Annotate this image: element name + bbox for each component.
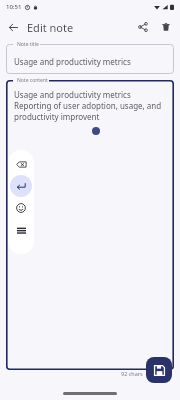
staticText: Note title [17, 41, 39, 48]
staticText: 92 chars [121, 370, 143, 377]
staticText: 10:51 [6, 3, 22, 11]
staticText: Usage and productivity metrics [14, 89, 131, 100]
staticText: Reporting of user adoption, usage, and [14, 100, 162, 111]
staticText: Usage and productivity metrics [14, 56, 131, 67]
button[interactable]: Delete [156, 17, 176, 37]
button[interactable]: Share [133, 17, 153, 37]
staticText: productivity improvent [14, 111, 100, 122]
button[interactable]: Note title [6, 44, 174, 74]
button[interactable]: More options [10, 219, 32, 241]
button[interactable]: New line [10, 175, 32, 197]
staticText: Edit note [27, 20, 74, 35]
button[interactable]: Note content [6, 80, 174, 370]
button[interactable]: Back [3, 17, 23, 37]
staticText: Note content [17, 77, 48, 84]
button[interactable]: Backspace [10, 153, 32, 175]
button[interactable]: Emoji [10, 197, 32, 219]
button[interactable]: Save note [146, 357, 172, 383]
